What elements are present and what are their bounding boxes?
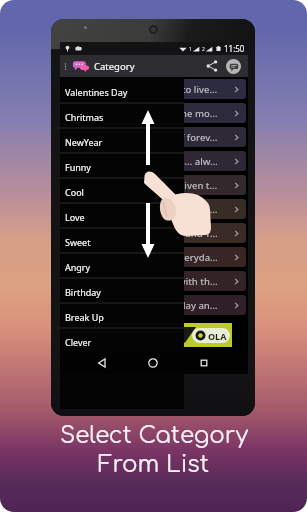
staticText: e to live… <box>174 83 218 96</box>
button[interactable]: given t… <box>62 175 246 195</box>
staticText: with th… <box>178 275 218 288</box>
staticText: OLA <box>208 330 227 342</box>
staticText: Sweet <box>65 236 91 248</box>
button[interactable]: Valentines Day <box>60 79 184 104</box>
staticText: Funny <box>65 161 91 173</box>
button[interactable]: Back <box>90 352 114 374</box>
button[interactable]: Break Up <box>60 304 184 329</box>
staticText: From List <box>98 452 209 478</box>
button[interactable]: Clever <box>60 329 184 354</box>
staticText: everyda… <box>174 251 218 264</box>
button[interactable]: More options <box>61 62 70 71</box>
button[interactable]: Cool <box>60 179 184 204</box>
staticText: …h… <box>196 203 218 216</box>
staticText: NewYear <box>65 136 103 148</box>
staticText: Love <box>65 211 85 223</box>
button[interactable]: Love <box>60 204 184 229</box>
staticText: Valentines Day <box>65 86 128 98</box>
button[interactable]: Angry <box>60 254 184 279</box>
button[interactable]: Chritmas <box>60 104 184 129</box>
staticText: Angry <box>65 261 91 273</box>
button[interactable]: Advertisement <box>76 323 232 347</box>
staticText: g and Y… <box>177 227 218 240</box>
staticText: f forev… <box>181 131 218 144</box>
staticText: Select Category <box>60 423 248 449</box>
staticText: s… alw… <box>180 155 218 168</box>
staticText: Category <box>94 60 135 73</box>
button[interactable]: Share <box>204 58 220 74</box>
button[interactable]: …h… <box>62 199 246 219</box>
button[interactable]: with th… <box>62 271 246 291</box>
staticText: Clever <box>65 336 92 348</box>
staticText: Break Up <box>65 311 104 323</box>
button[interactable]: s… alw… <box>62 151 246 171</box>
staticText: the mo… <box>175 107 218 120</box>
staticText: 1 <box>189 46 192 53</box>
staticText: given t… <box>176 179 218 192</box>
staticText: 11:50 <box>224 43 245 54</box>
button[interactable]: the mo… <box>62 103 246 123</box>
button[interactable]: Messages <box>226 59 241 74</box>
staticText: Birthday <box>65 286 101 298</box>
button[interactable]: Home <box>141 352 165 374</box>
button[interactable]: Sweet <box>60 229 184 254</box>
button[interactable]: NewYear <box>60 129 184 154</box>
button[interactable]: g and Y… <box>62 223 246 243</box>
button[interactable]: everyda… <box>62 247 246 267</box>
button[interactable]: e to live… <box>62 79 246 99</box>
button[interactable]: play an… <box>62 295 246 315</box>
staticText: Cool <box>65 186 84 198</box>
button[interactable]: Birthday <box>60 279 184 304</box>
staticText: play an… <box>177 299 218 312</box>
button[interactable]: Recents <box>192 352 216 374</box>
button[interactable]: f forev… <box>62 127 246 147</box>
staticText: Chritmas <box>65 111 104 123</box>
staticText: 2 <box>202 46 205 53</box>
button[interactable]: Funny <box>60 154 184 179</box>
